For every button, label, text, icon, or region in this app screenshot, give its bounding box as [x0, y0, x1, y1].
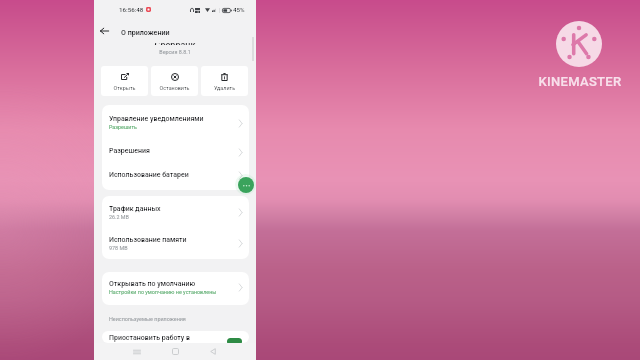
button[interactable]: Разрешения — [102, 139, 249, 163]
staticText: Версия 8.8.1 — [94, 49, 256, 55]
staticText: Открыть — [101, 85, 148, 91]
staticText: 45% — [233, 6, 245, 13]
staticText: Сбербанк — [94, 40, 256, 51]
staticText: Трафик данных — [109, 205, 161, 213]
button[interactable]: Приостановить работу в — [102, 332, 249, 343]
button[interactable]: Открыть — [101, 66, 148, 96]
staticText: Приостановить работу в — [109, 334, 227, 342]
button[interactable]: Использование памяти — [102, 227, 249, 258]
button[interactable]: Home — [165, 343, 185, 360]
button[interactable]: Использование батареи — [102, 159, 249, 190]
button[interactable]: Удалить — [201, 66, 248, 96]
staticText: Разрешить — [109, 124, 137, 130]
button[interactable]: Открывать по умолчанию — [102, 272, 249, 303]
staticText: Открывать по умолчанию — [109, 280, 196, 288]
staticText: 26.2 MB — [109, 214, 129, 220]
button[interactable]: Управление уведомлениями — [102, 105, 249, 139]
staticText: О приложении — [121, 28, 170, 36]
button[interactable]: Back — [203, 343, 223, 360]
button[interactable]: Recents — [127, 343, 147, 360]
staticText: 978 MB — [109, 245, 128, 251]
staticText: Настройки по умолчанию не установлены — [109, 289, 217, 295]
staticText: 16:56:48 — [119, 6, 144, 13]
staticText: Управление уведомлениями — [109, 115, 204, 123]
staticText: Использование батареи — [109, 171, 189, 179]
staticText: Разрешения — [109, 147, 150, 155]
button[interactable]: Back — [95, 21, 114, 40]
staticText: KINEMASTER — [534, 74, 626, 89]
staticText: Использование памяти — [109, 236, 187, 244]
staticText: Удалить — [201, 85, 248, 91]
button[interactable]: More options — [238, 177, 254, 193]
staticText: Неиспользуемые приложения — [109, 316, 186, 322]
staticText: Остановить — [151, 85, 198, 91]
button[interactable]: Трафик данных — [102, 196, 249, 227]
button[interactable]: Остановить — [151, 66, 198, 96]
